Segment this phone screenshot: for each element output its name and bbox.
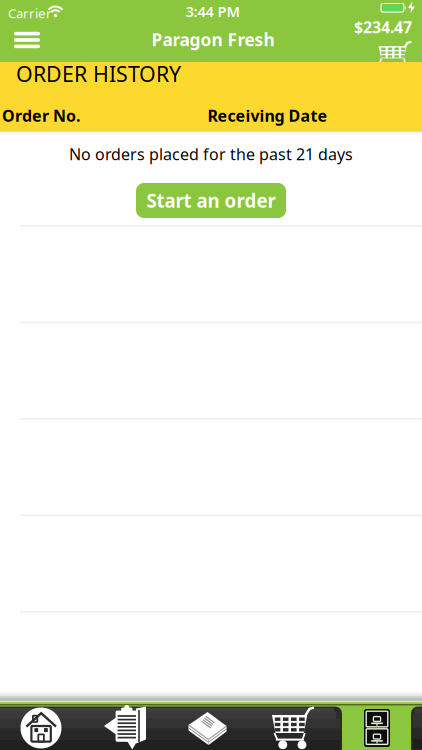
staticText: Start an order xyxy=(146,188,275,213)
staticText: ORDER HISTORY xyxy=(16,59,181,88)
button[interactable]: Home xyxy=(0,706,83,750)
staticText: No orders placed for the past 21 days xyxy=(69,143,353,165)
button[interactable]: Cart xyxy=(251,706,335,750)
button[interactable]: Order history xyxy=(335,706,419,750)
staticText: Receiving Date xyxy=(207,105,327,126)
button[interactable]: Catalog xyxy=(167,706,251,750)
staticText: Carrier xyxy=(8,4,52,22)
staticText: $234.47 xyxy=(354,16,412,38)
button[interactable]: Cart xyxy=(322,20,412,62)
button[interactable]: Start an order xyxy=(136,183,286,218)
button[interactable]: Menu xyxy=(7,26,47,54)
button[interactable]: Order guide xyxy=(83,706,167,750)
staticText: Order No. xyxy=(2,105,80,126)
staticText: Paragon Fresh xyxy=(151,28,274,51)
staticText: 3:44 PM xyxy=(185,1,240,21)
